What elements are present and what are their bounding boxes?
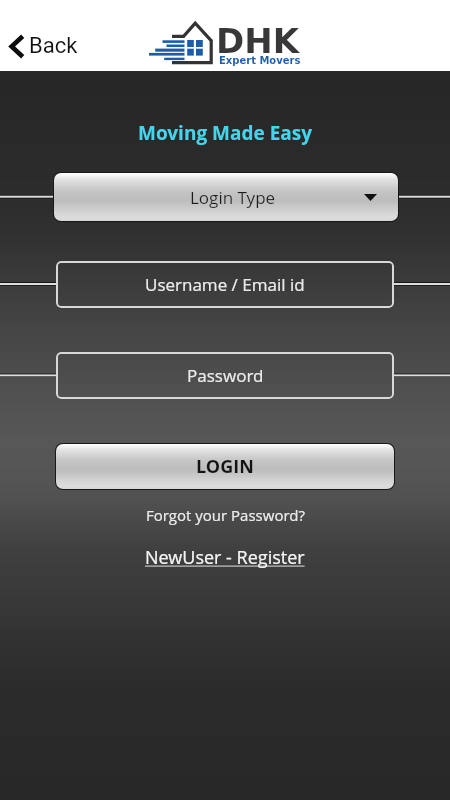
button[interactable]: Password: [56, 352, 394, 399]
button[interactable]: LOGIN: [55, 443, 395, 490]
button[interactable]: NewUser - Register: [137, 542, 313, 573]
staticText: Expert Movers: [219, 55, 301, 67]
staticText: Moving Made Easy: [0, 120, 450, 146]
staticText: Login Type: [190, 186, 276, 209]
button[interactable]: Login Type: [53, 172, 399, 222]
button[interactable]: Forgot your Password?: [136, 501, 315, 529]
staticText: DHK: [216, 21, 300, 61]
button[interactable]: Back: [4, 30, 92, 62]
staticText: Password: [187, 364, 264, 387]
staticText: LOGIN: [196, 454, 254, 479]
button[interactable]: Username / Email id: [56, 261, 394, 308]
staticText: Username / Email id: [145, 273, 305, 296]
staticText: Back: [29, 33, 78, 59]
